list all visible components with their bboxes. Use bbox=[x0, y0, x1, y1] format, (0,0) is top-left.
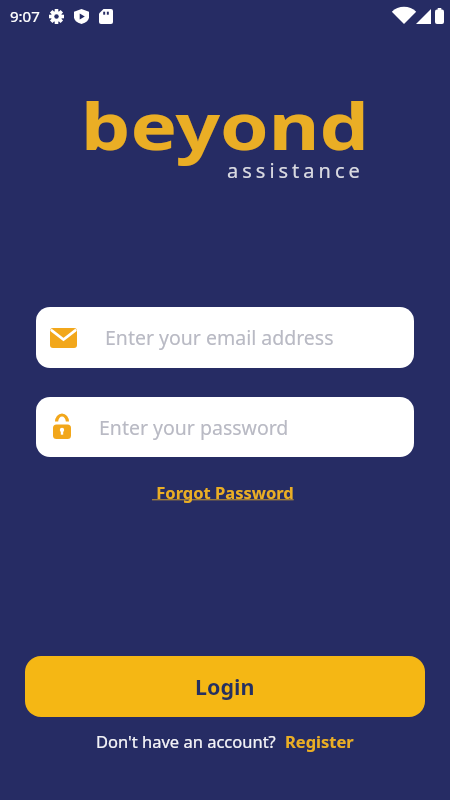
staticText: Enter your password bbox=[99, 414, 289, 441]
staticText: beyond bbox=[81, 82, 369, 169]
button[interactable]: Enter your password bbox=[36, 397, 414, 457]
button[interactable]: Login bbox=[25, 656, 425, 717]
button[interactable]: Register bbox=[285, 730, 354, 752]
button[interactable]: Enter your email address bbox=[36, 307, 414, 368]
staticText: 9:07 bbox=[10, 6, 40, 26]
staticText: assistance bbox=[227, 157, 364, 184]
staticText: Login bbox=[195, 672, 255, 701]
staticText: Enter your email address bbox=[105, 324, 334, 351]
button[interactable]: Forgot Password bbox=[152, 481, 298, 503]
staticText: Don't have an account? bbox=[96, 730, 276, 752]
